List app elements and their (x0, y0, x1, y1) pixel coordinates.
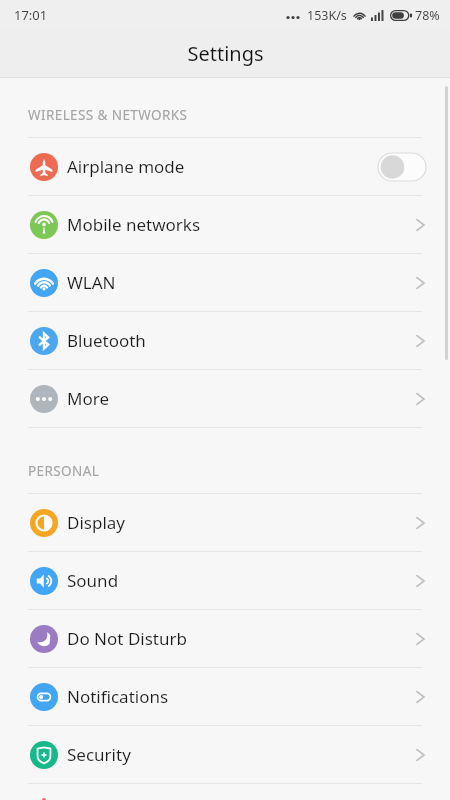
staticText: Mobile networks (67, 213, 201, 236)
staticText: Notifications (67, 685, 169, 708)
staticText: Settings (187, 40, 264, 67)
staticText: Security (67, 743, 131, 766)
button[interactable]: Sound (0, 552, 450, 609)
button[interactable]: Airplane mode (0, 138, 450, 195)
button[interactable]: Security (0, 726, 450, 783)
staticText: 153K/s (307, 7, 347, 24)
button[interactable]: Bluetooth (0, 312, 450, 369)
staticText: PERSONAL (28, 462, 100, 480)
button[interactable]: WLAN (0, 254, 450, 311)
button[interactable]: Do Not Disturb (0, 610, 450, 667)
button[interactable]: More (0, 370, 450, 427)
staticText: More (67, 387, 109, 410)
button[interactable]: Mobile networks (0, 196, 450, 253)
staticText: Sound (67, 569, 119, 592)
staticText: 78% (415, 7, 440, 24)
button[interactable] (0, 784, 450, 800)
staticText: WLAN (67, 271, 116, 294)
button[interactable]: Display (0, 494, 450, 551)
button[interactable]: Airplane mode toggle (378, 153, 426, 181)
staticText: 17:01 (14, 6, 48, 24)
staticText: Do Not Disturb (67, 627, 187, 650)
staticText: Airplane mode (67, 155, 185, 178)
button[interactable]: Notifications (0, 668, 450, 725)
staticText: Bluetooth (67, 329, 146, 352)
staticText: WIRELESS & NETWORKS (28, 106, 188, 124)
staticText: Display (67, 511, 125, 534)
